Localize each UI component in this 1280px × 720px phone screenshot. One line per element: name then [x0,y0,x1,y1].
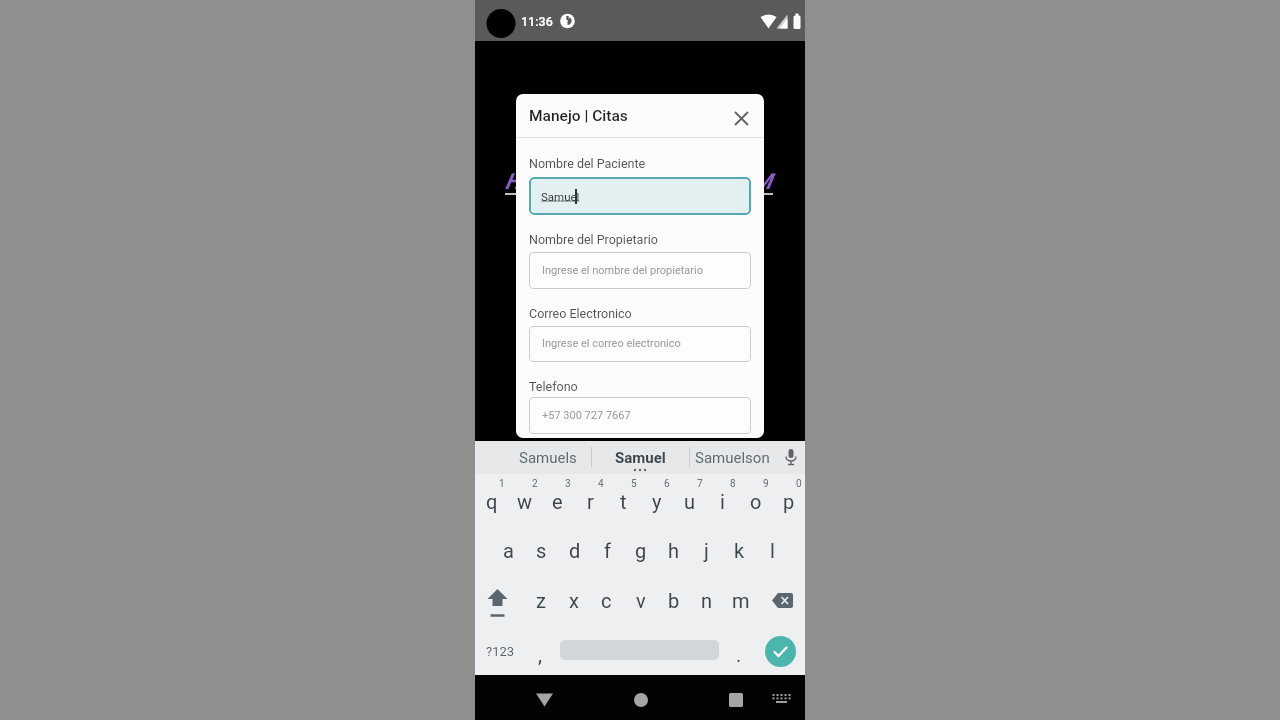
staticText: Ingrese el nombre del propietario [542,264,703,277]
staticText: Ingrese el correo electronico [542,337,681,350]
button[interactable]: a [492,536,525,564]
staticText: x [569,589,579,612]
staticText: 8 [730,478,736,490]
staticText: . [736,643,742,666]
staticText: n [701,589,713,612]
staticText: Telefono [529,379,578,394]
staticText: 11:36 [521,14,553,29]
button[interactable] [530,686,559,713]
button[interactable]: p [772,487,805,515]
button[interactable]: z [524,586,557,614]
staticText: H [505,169,521,195]
staticText: f [604,539,611,562]
button[interactable]: Samuelson [662,444,802,472]
staticText: , [538,643,542,666]
staticText: Nombre del Paciente [529,156,646,171]
staticText: 9 [763,478,769,490]
staticText: l [770,539,775,562]
staticText: M [753,169,772,195]
button[interactable]: s [525,536,558,564]
staticText: t [620,490,627,513]
button[interactable]: c [590,586,623,614]
button[interactable] [765,636,796,667]
button[interactable] [772,593,793,608]
button[interactable]: d [558,536,591,564]
staticText: q [486,490,498,513]
staticText: Samuel [541,190,580,203]
staticText: d [569,539,581,562]
staticText: i [720,490,725,513]
button[interactable]: o [739,487,772,515]
button[interactable]: q [475,487,508,515]
button[interactable]: j [690,536,723,564]
staticText: Samuels [519,449,577,467]
staticText: Manejo | Citas [529,107,628,125]
button[interactable] [486,589,509,618]
button[interactable]: Ingrese el nombre del propietario [529,252,751,289]
staticText: s [536,539,547,562]
staticText: o [750,490,762,513]
button[interactable]: w [508,487,541,515]
button[interactable]: Samuel [529,177,751,215]
button[interactable]: r [574,487,607,515]
staticText: 1 [499,478,505,490]
button[interactable] [626,686,655,713]
button[interactable] [784,449,798,467]
button[interactable]: . [669,640,809,668]
staticText: v [636,589,646,612]
button[interactable]: v [624,586,657,614]
staticText: b [668,589,680,612]
button[interactable]: Ingrese el correo electronico [529,326,751,362]
staticText: w [517,490,533,513]
staticText: 4 [598,478,604,490]
button[interactable]: e [541,487,574,515]
button[interactable] [721,686,750,713]
staticText: k [734,539,745,562]
staticText: z [536,589,546,612]
staticText: y [652,490,662,513]
staticText: Correo Electronico [529,306,632,321]
button[interactable]: b [657,586,690,614]
button[interactable]: Samuel [570,444,710,472]
button[interactable]: l [756,536,789,564]
button[interactable]: u [673,487,706,515]
button[interactable]: h [657,536,690,564]
staticText: 7 [697,478,703,490]
button[interactable]: x [557,586,590,614]
staticText: 0 [796,478,802,490]
button[interactable]: Samuels [478,444,618,472]
staticText: c [601,589,612,612]
staticText: g [635,539,647,562]
button[interactable]: k [723,536,756,564]
staticText: m [732,589,750,612]
staticText: r [587,490,594,513]
button[interactable]: , [470,640,610,668]
staticText: Samuelson [695,449,770,467]
button[interactable]: y [640,487,673,515]
staticText: 6 [664,478,670,490]
button[interactable]: ?123 [430,637,570,665]
staticText: +57 300 727 7667 [542,409,631,422]
button[interactable]: m [724,586,757,614]
button[interactable] [771,693,792,705]
button[interactable]: +57 300 727 7667 [529,397,751,434]
staticText: j [704,539,709,562]
button[interactable] [727,104,755,132]
button[interactable]: n [690,586,723,614]
button[interactable]: t [607,487,640,515]
staticText: h [668,539,680,562]
staticText: 2 [532,478,538,490]
button[interactable]: i [706,487,739,515]
staticText: ?123 [486,644,515,659]
staticText: Nombre del Propietario [529,232,658,247]
button[interactable]: g [624,536,657,564]
staticText: a [503,539,514,562]
staticText: Samuel [615,449,666,467]
button[interactable]: f [591,536,624,564]
staticText: 5 [631,478,637,490]
staticText: 3 [565,478,571,490]
staticText: u [684,490,696,513]
staticText: p [783,490,795,513]
staticText: e [552,490,563,513]
